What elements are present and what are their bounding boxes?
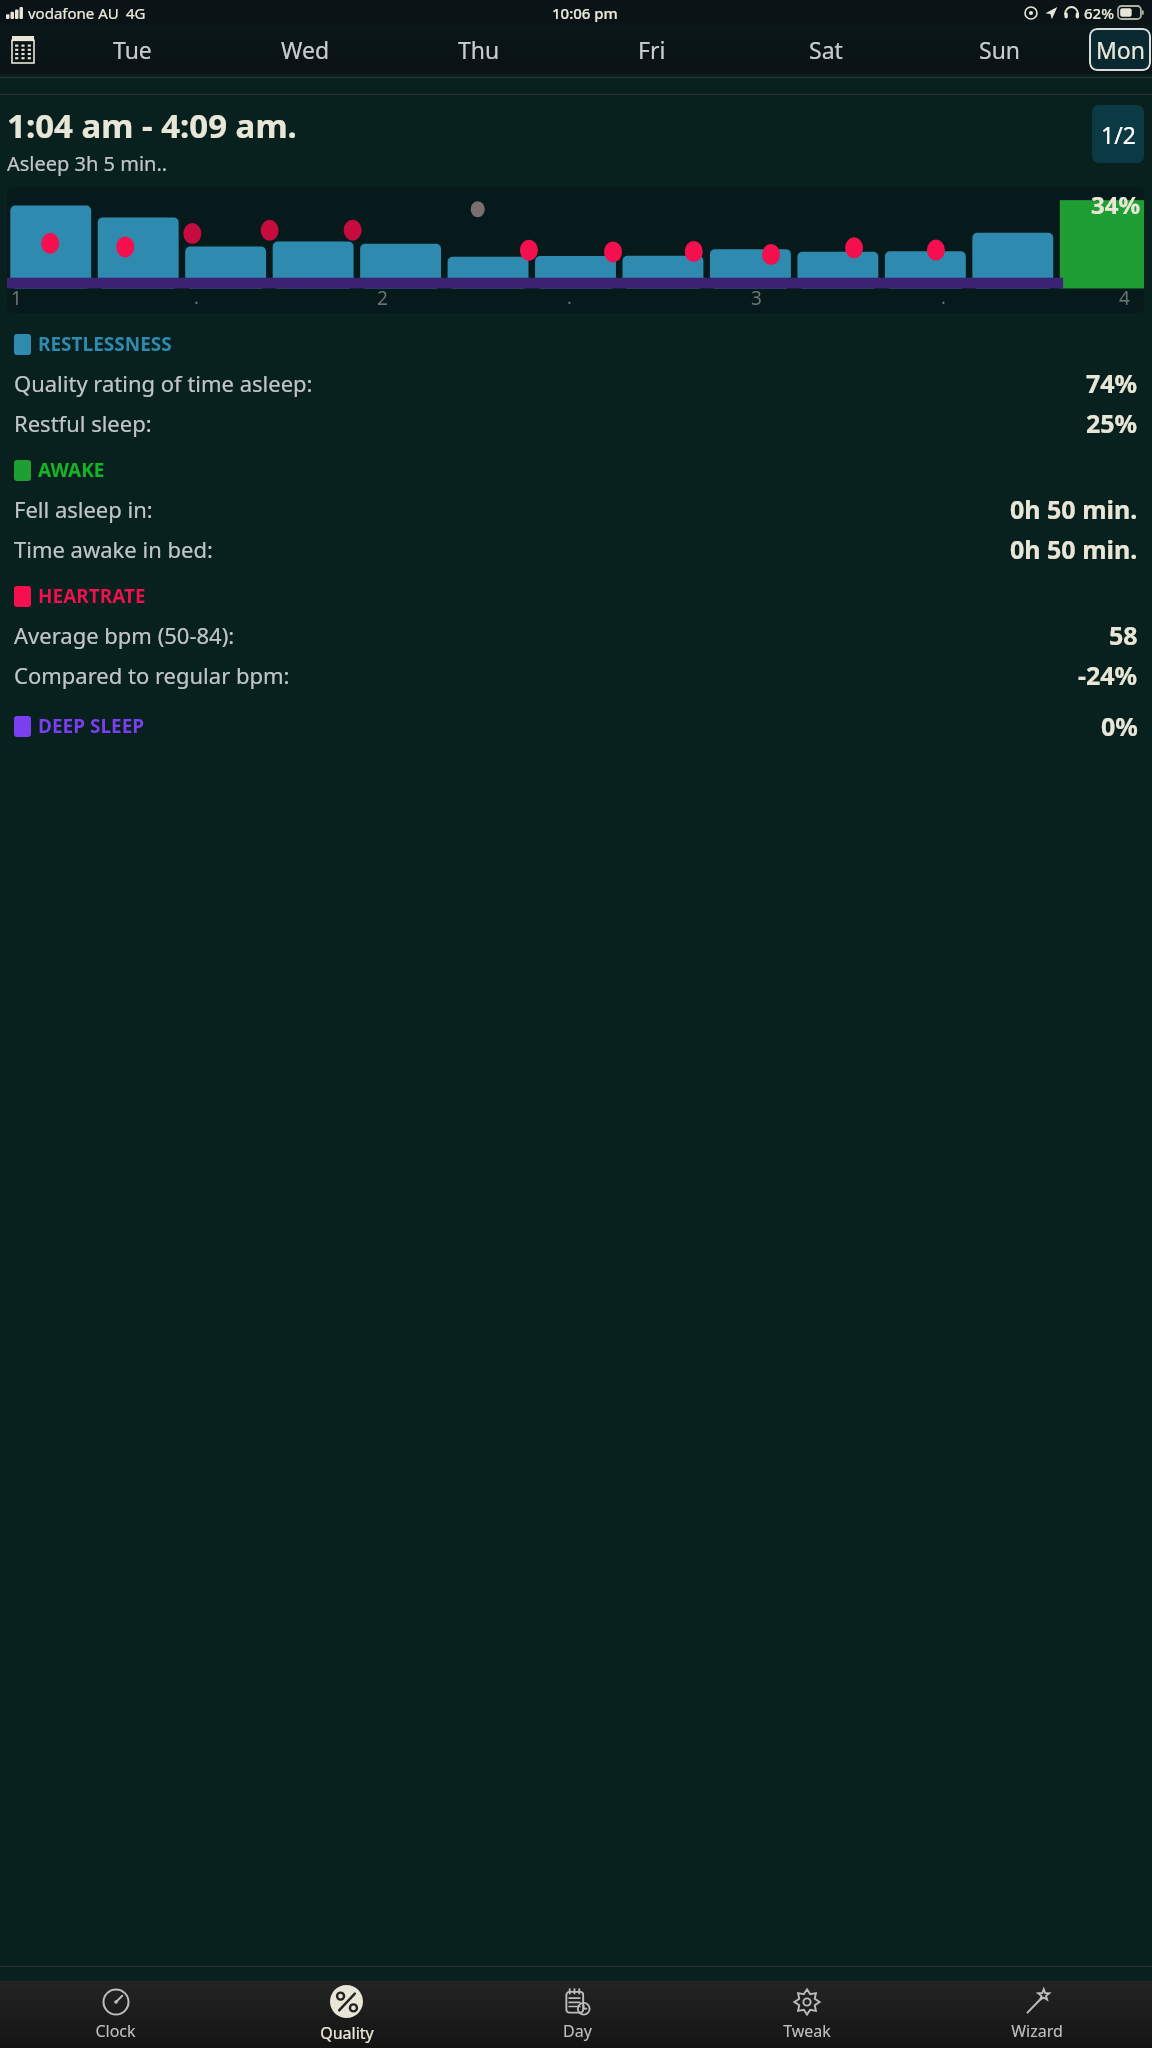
staticText: Thu — [458, 34, 500, 65]
button[interactable]: Mon — [1089, 28, 1151, 71]
staticText: 1 — [11, 285, 22, 311]
staticText: -24% — [1078, 658, 1138, 692]
button[interactable]: Wed — [219, 25, 392, 74]
button[interactable]: Restful sleep: — [14, 406, 1138, 440]
staticText: Asleep 3h 5 min.. — [7, 150, 168, 177]
staticText: Quality rating of time asleep: — [14, 368, 313, 398]
button[interactable]: Fell asleep in: — [14, 492, 1138, 526]
staticText: 62% — [1084, 3, 1114, 23]
staticText: Average bpm (50-84): — [14, 620, 235, 650]
button[interactable]: Compared to regular bpm: — [14, 658, 1138, 692]
staticText: 0h 50 min. — [1010, 532, 1138, 566]
button[interactable]: Quality rating of time asleep: — [14, 366, 1138, 400]
staticText: Tue — [113, 34, 152, 65]
staticText: Restful sleep: — [14, 408, 152, 438]
staticText: 10:06 pm — [552, 3, 618, 23]
button[interactable]: Clock — [0, 1981, 231, 2048]
staticText: 25% — [1086, 406, 1138, 440]
staticText: Fri — [638, 34, 666, 65]
staticText: 74% — [1086, 366, 1138, 400]
staticText: AWAKE — [38, 457, 105, 483]
staticText: 1/2 — [1101, 119, 1136, 150]
button[interactable]: AWAKE — [14, 457, 1138, 483]
staticText: Wed — [281, 34, 330, 65]
button[interactable]: Sat — [739, 25, 913, 74]
staticText: Tweak — [783, 2020, 831, 2042]
button[interactable]: HEARTRATE — [14, 583, 1138, 609]
staticText: HEARTRATE — [38, 583, 146, 609]
button[interactable]: Quality — [231, 1981, 462, 2048]
staticText: 3 — [751, 285, 762, 311]
button[interactable]: Sun — [913, 25, 1087, 74]
staticText: Day — [563, 2020, 592, 2042]
button[interactable]: Tweak — [692, 1981, 922, 2048]
staticText: 4G — [126, 3, 146, 23]
staticText: 58 — [1109, 618, 1138, 652]
staticText: 1:04 am - 4:09 am. — [7, 103, 297, 148]
button[interactable]: Tue — [46, 25, 219, 74]
staticText: Time awake in bed: — [14, 534, 213, 564]
button[interactable]: Fri — [565, 25, 739, 74]
button[interactable]: Calendar — [0, 25, 46, 74]
button[interactable]: 34% — [7, 187, 1144, 313]
staticText: Compared to regular bpm: — [14, 660, 290, 690]
staticText: Wizard — [1011, 2020, 1063, 2042]
staticText: Clock — [95, 2020, 136, 2042]
staticText: Sun — [979, 34, 1021, 65]
staticText: . — [194, 285, 199, 310]
button[interactable]: Day — [462, 1981, 692, 2048]
button[interactable]: Average bpm (50-84): — [14, 618, 1138, 652]
staticText: 0% — [1101, 709, 1138, 743]
button[interactable]: Wizard — [922, 1981, 1152, 2048]
staticText: vodafone AU — [28, 3, 119, 23]
button[interactable]: Time awake in bed: — [14, 532, 1138, 566]
staticText: Mon — [1096, 34, 1145, 65]
staticText: 4 — [1119, 285, 1130, 311]
button[interactable]: 1/2 — [1092, 105, 1144, 163]
staticText: . — [941, 285, 946, 310]
staticText: 2 — [377, 285, 388, 311]
staticText: Quality — [320, 2022, 374, 2044]
staticText: RESTLESSNESS — [38, 331, 172, 357]
staticText: . — [567, 285, 572, 310]
staticText: Sat — [809, 34, 843, 65]
button[interactable]: RESTLESSNESS — [14, 331, 1138, 357]
staticText: 0h 50 min. — [1010, 492, 1138, 526]
button[interactable]: Thu — [392, 25, 565, 74]
staticText: DEEP SLEEP — [38, 713, 145, 739]
staticText: Fell asleep in: — [14, 494, 153, 524]
staticText: 34% — [1091, 188, 1141, 221]
